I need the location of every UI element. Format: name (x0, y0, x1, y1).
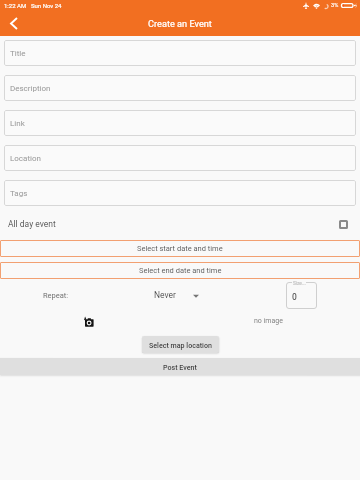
button[interactable]: Back (0, 11, 26, 36)
staticText: 1:22 AM (4, 2, 27, 9)
staticText: All day event (8, 219, 56, 229)
staticText: 3% (331, 2, 339, 9)
button[interactable]: Never (154, 290, 199, 300)
staticText: Size... (293, 281, 306, 287)
staticText: 0 (292, 292, 297, 302)
button[interactable]: Take photo (78, 310, 98, 330)
button[interactable]: Location (4, 145, 356, 171)
button[interactable]: Select end date and time (0, 262, 360, 279)
staticText: Repeat: (43, 291, 69, 300)
button[interactable]: Title (4, 40, 356, 66)
staticText: Create an Event (148, 18, 212, 29)
staticText: Post Event (163, 363, 197, 371)
button[interactable]: Tags (4, 180, 356, 206)
staticText: Description (10, 84, 51, 93)
button[interactable]: All day event checkbox (339, 220, 348, 229)
staticText: Title (10, 49, 26, 58)
button[interactable]: 0 (286, 282, 317, 309)
button[interactable]: Post Event (0, 358, 360, 375)
button[interactable]: Link (4, 110, 356, 136)
staticText: Select map location (149, 341, 212, 349)
staticText: Location (10, 154, 41, 163)
staticText: Sun Nov 24 (31, 2, 62, 9)
staticText: Select end date and time (139, 266, 222, 275)
button[interactable]: Select map location (142, 336, 219, 353)
staticText: Tags (10, 189, 28, 198)
button[interactable]: Select start date and time (0, 240, 360, 257)
staticText: no image (254, 317, 283, 325)
staticText: Never (154, 290, 176, 300)
staticText: Link (10, 119, 25, 128)
staticText: Select start date and time (137, 244, 223, 253)
button[interactable]: Description (4, 75, 356, 101)
